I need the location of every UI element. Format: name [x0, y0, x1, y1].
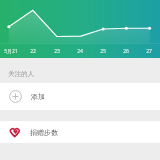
button[interactable]: 捐赠步数 [0, 121, 160, 143]
staticText: 27 [146, 48, 152, 55]
staticText: 添加 [31, 92, 45, 101]
staticText: 关注的人 [8, 70, 34, 78]
other: 捐赠步数 [9, 126, 21, 138]
staticText: 25 [100, 48, 106, 55]
button[interactable]: 添加 [0, 83, 160, 110]
staticText: 22 [30, 48, 36, 55]
staticText: 23 [54, 48, 60, 55]
staticText: 24 [77, 48, 83, 55]
staticText: 5月21 [4, 48, 18, 55]
staticText: 捐赠步数 [30, 128, 58, 137]
other: 添加 [9, 90, 22, 103]
button[interactable]: 5月21 [0, 0, 160, 58]
staticText: 26 [123, 48, 129, 55]
